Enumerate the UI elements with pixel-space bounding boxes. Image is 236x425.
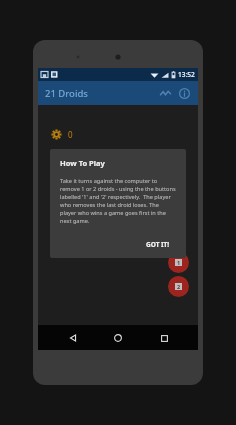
staticText: 1	[177, 259, 181, 266]
button[interactable]: Recent apps	[153, 327, 175, 349]
staticText: 2	[177, 283, 181, 290]
button[interactable]: Home	[107, 327, 129, 349]
button[interactable]: 1	[168, 252, 189, 273]
staticText: Take it turns against the computer to re…	[60, 177, 176, 225]
staticText: How To Play	[60, 158, 105, 168]
staticText: GOT IT!	[146, 240, 170, 249]
staticText: 0	[68, 129, 73, 140]
button[interactable]: Info	[175, 84, 193, 102]
button[interactable]: GOT IT!	[140, 237, 176, 252]
staticText: 21 Droids	[45, 87, 88, 100]
button[interactable]: Statistics	[156, 84, 174, 102]
button[interactable]: Back	[62, 327, 84, 349]
button[interactable]: 2	[168, 276, 189, 297]
staticText: 13:52	[178, 70, 195, 79]
